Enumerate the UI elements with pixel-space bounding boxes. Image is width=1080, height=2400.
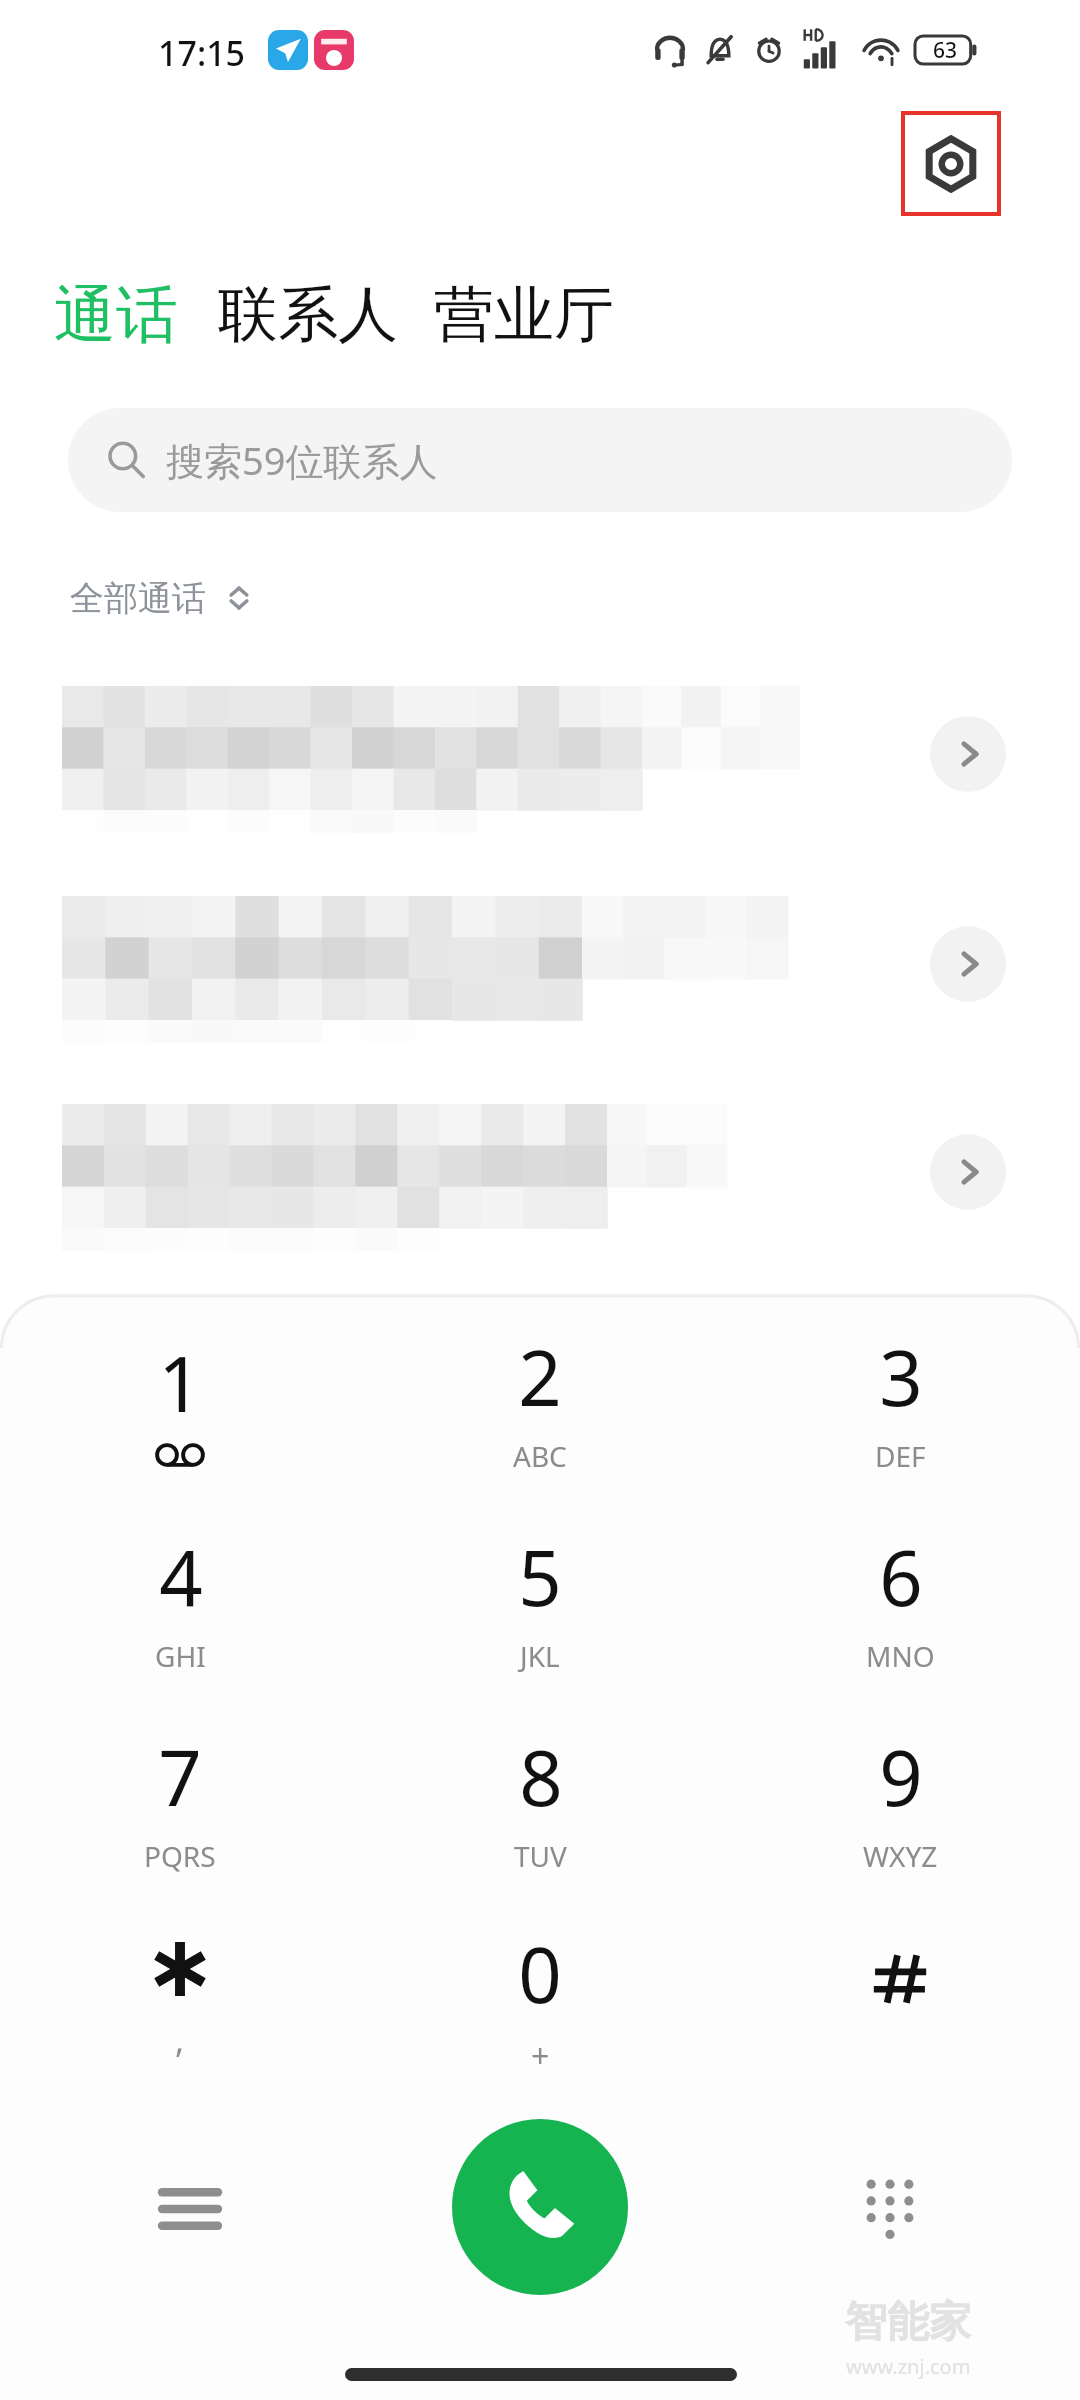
staticText: JKL: [520, 1637, 560, 1675]
button[interactable]: Call details: [0, 860, 1080, 1050]
staticText: 9: [879, 1725, 923, 1829]
staticText: PQRS: [144, 1837, 216, 1875]
button[interactable]: 联系人: [216, 277, 400, 353]
staticText: 智能家: [845, 2296, 971, 2349]
button[interactable]: 全部通话: [70, 560, 262, 636]
button[interactable]: 0: [420, 1905, 660, 2095]
button[interactable]: ,: [60, 1905, 300, 2095]
staticText: 全部通话: [70, 577, 206, 620]
staticText: +: [531, 2034, 550, 2078]
button[interactable]: Call: [452, 2119, 628, 2295]
staticText: 6: [879, 1525, 923, 1629]
button[interactable]: 5: [420, 1505, 660, 1695]
staticText: GHI: [155, 1637, 206, 1675]
staticText: DEF: [875, 1437, 926, 1475]
button[interactable]: 营业厅: [432, 277, 616, 353]
staticText: 17:15: [158, 30, 246, 76]
button[interactable]: 2: [420, 1305, 660, 1495]
button[interactable]: Call details: [0, 650, 1080, 840]
staticText: ,: [175, 2017, 185, 2063]
staticText: 搜索59位联系人: [166, 434, 438, 486]
staticText: 2: [518, 1325, 562, 1429]
staticText: 4: [159, 1525, 203, 1629]
button[interactable]: 7: [60, 1705, 300, 1895]
button[interactable]: 6: [780, 1505, 1020, 1695]
staticText: ABC: [513, 1437, 567, 1475]
staticText: 营业厅: [434, 277, 614, 353]
button[interactable]: 8: [420, 1705, 660, 1895]
staticText: MNO: [866, 1637, 935, 1675]
button[interactable]: Call details: [0, 1068, 1080, 1258]
button[interactable]: 4: [60, 1505, 300, 1695]
button[interactable]: [780, 1905, 1020, 2095]
staticText: 8: [519, 1725, 563, 1829]
staticText: TUV: [514, 1837, 567, 1875]
staticText: 5: [518, 1525, 562, 1629]
staticText: 63: [933, 36, 958, 65]
staticText: 0: [518, 1922, 562, 2026]
button[interactable]: Call details: [930, 716, 1006, 792]
button[interactable]: Call log menu: [130, 2149, 250, 2269]
button[interactable]: 9: [780, 1705, 1020, 1895]
staticText: 联系人: [218, 277, 398, 353]
staticText: 1: [158, 1331, 202, 1435]
button[interactable]: Keypad: [830, 2149, 950, 2269]
button[interactable]: 通话: [52, 276, 180, 354]
staticText: 7: [158, 1725, 202, 1829]
staticText: 3: [879, 1325, 923, 1429]
staticText: www.znj.com: [846, 2353, 971, 2380]
button[interactable]: Call details: [930, 1134, 1006, 1210]
staticText: 通话: [54, 276, 178, 354]
staticText: WXYZ: [863, 1837, 938, 1875]
button[interactable]: 3: [780, 1305, 1020, 1495]
button[interactable]: 1: [60, 1305, 300, 1495]
button[interactable]: 搜索59位联系人: [68, 408, 1012, 512]
button[interactable]: Call details: [930, 926, 1006, 1002]
button[interactable]: Settings: [903, 113, 999, 214]
